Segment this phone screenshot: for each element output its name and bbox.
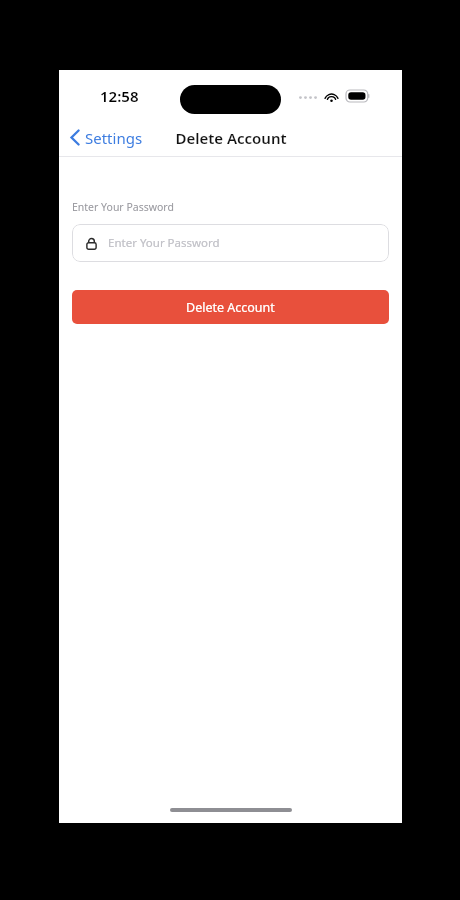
staticText: Enter Your Password <box>108 235 220 251</box>
button[interactable]: Delete Account <box>72 290 389 324</box>
staticText: Enter Your Password <box>72 200 174 214</box>
button[interactable]: Back <box>64 118 149 157</box>
staticText: Delete Account <box>175 128 287 148</box>
button[interactable]: Enter Your Password <box>72 224 389 262</box>
other: Back <box>70 129 80 146</box>
staticText: Settings <box>85 128 143 148</box>
staticText: 12:58 <box>100 86 139 106</box>
staticText: Delete Account <box>186 299 275 316</box>
